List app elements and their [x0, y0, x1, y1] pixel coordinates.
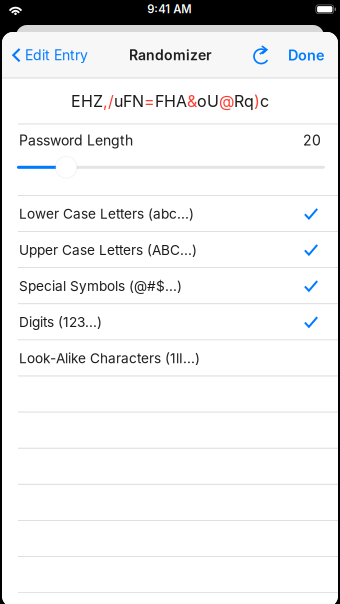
staticText: Rq — [234, 92, 254, 111]
staticText: / — [108, 92, 114, 111]
button[interactable]: Look-Alike Characters (1lI...) — [2, 340, 338, 376]
staticText: & — [187, 92, 197, 111]
staticText: c — [260, 92, 269, 111]
staticText: oU — [197, 92, 219, 111]
staticText: , — [103, 92, 108, 111]
staticText: Done — [288, 46, 325, 64]
button[interactable] — [2, 448, 338, 485]
staticText: @ — [219, 92, 234, 111]
staticText: Upper Case Letters (ABC...) — [19, 242, 197, 258]
button[interactable] — [2, 521, 338, 557]
staticText: FHA — [155, 92, 187, 111]
staticText: = — [144, 92, 155, 111]
button[interactable] — [2, 557, 338, 593]
button[interactable]: Digits (123...) — [2, 304, 338, 340]
staticText: EHZ — [71, 92, 103, 111]
button[interactable]: Done — [276, 33, 338, 78]
button[interactable]: Upper Case Letters (ABC...) — [2, 232, 338, 268]
button[interactable]: Special Symbols (@#$...) — [2, 268, 338, 304]
staticText: Digits (123...) — [19, 314, 102, 330]
button[interactable] — [2, 376, 338, 412]
button[interactable] — [2, 485, 338, 521]
staticText: Lower Case Letters (abc...) — [19, 206, 194, 222]
staticText: uFN — [114, 92, 144, 111]
button[interactable] — [2, 412, 338, 448]
staticText: Randomizer — [129, 47, 212, 64]
button[interactable]: Lower Case Letters (abc...) — [2, 196, 338, 232]
staticText: 20 — [303, 132, 321, 149]
staticText: Look-Alike Characters (1lI...) — [19, 350, 200, 366]
staticText: 9:41 AM — [147, 2, 191, 16]
button[interactable]: Edit Entry — [2, 33, 94, 78]
staticText: Edit Entry — [25, 47, 88, 64]
staticText: ) — [254, 92, 260, 111]
staticText: Password Length — [19, 132, 133, 149]
button[interactable]: Regenerate password — [247, 33, 276, 78]
staticText: Special Symbols (@#$...) — [19, 278, 182, 294]
